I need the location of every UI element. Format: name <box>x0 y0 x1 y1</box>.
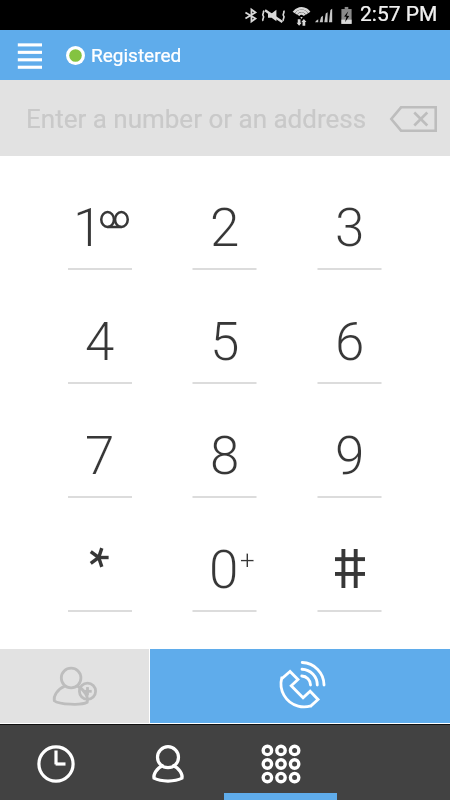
staticText: 7 <box>85 425 115 487</box>
button[interactable]: Dialpad <box>224 725 337 800</box>
button[interactable]: Backspace <box>384 80 450 156</box>
button[interactable] <box>287 498 412 612</box>
button[interactable]: 5 <box>162 270 287 384</box>
button[interactable]: 4 <box>38 270 162 384</box>
button[interactable]: 8 <box>162 384 287 498</box>
button[interactable]: Recents <box>0 725 112 800</box>
staticText: Registered <box>91 44 182 66</box>
button[interactable]: 6 <box>287 270 412 384</box>
staticText: 0 <box>209 539 239 601</box>
staticText: 1 <box>73 197 103 259</box>
staticText: + <box>240 545 255 575</box>
staticText: 2 <box>210 197 240 259</box>
staticText: 6 <box>335 311 365 373</box>
button[interactable]: 0 <box>162 498 287 612</box>
button[interactable]: Contacts <box>112 725 224 800</box>
button[interactable]: 3 <box>287 156 412 270</box>
button[interactable]: 1 <box>38 156 162 270</box>
staticText: 5 <box>210 311 240 373</box>
button[interactable]: 9 <box>287 384 412 498</box>
button[interactable]: Call <box>150 649 450 723</box>
button[interactable]: Add contact <box>0 649 149 723</box>
staticText: 8 <box>210 425 240 487</box>
staticText: 9 <box>335 425 365 487</box>
button[interactable]: Open navigation menu <box>0 30 60 80</box>
button[interactable] <box>38 498 162 612</box>
staticText: 3 <box>335 197 365 259</box>
button[interactable]: 7 <box>38 384 162 498</box>
staticText: Enter a number or an address <box>26 104 367 134</box>
staticText: 2:57 PM <box>360 2 438 27</box>
staticText: 4 <box>85 311 115 373</box>
button[interactable]: 2 <box>162 156 287 270</box>
